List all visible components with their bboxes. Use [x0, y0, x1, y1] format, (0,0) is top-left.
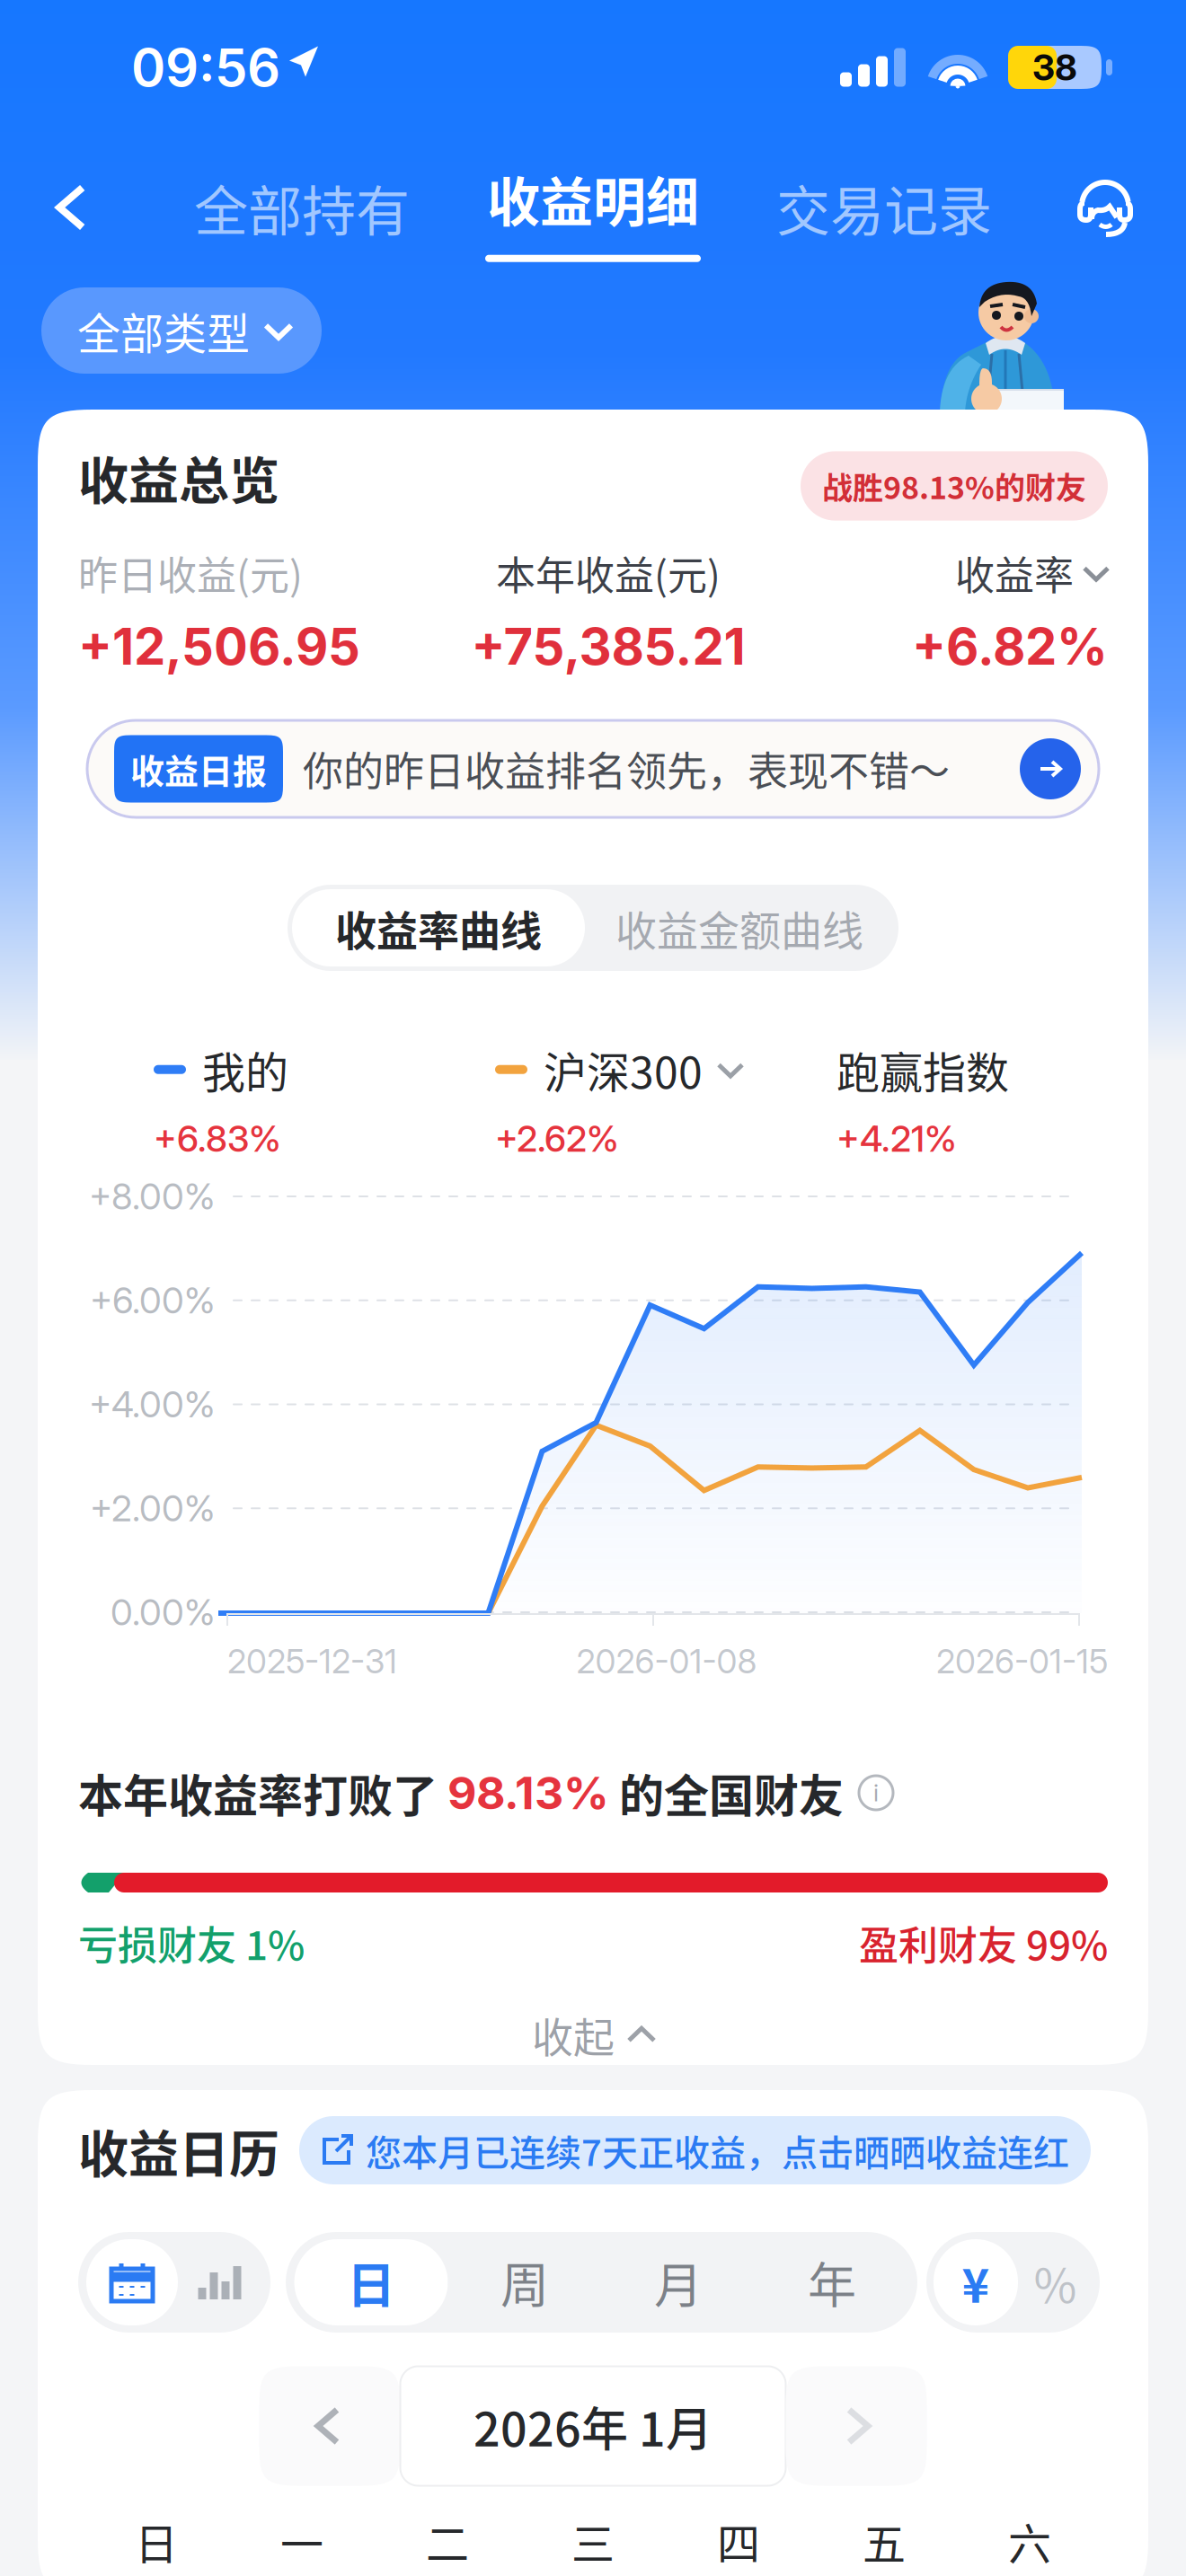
staticText: 收益日历	[78, 2114, 279, 2187]
staticText: 亏损财友 1%	[78, 1914, 305, 1971]
staticText: 本年收益(元)	[496, 544, 721, 602]
button[interactable]: 返回	[29, 146, 119, 269]
staticText: +4.00%	[89, 1383, 215, 1426]
button[interactable]: 在线客服	[1067, 142, 1143, 273]
staticText: 周	[500, 2247, 549, 2317]
staticText: 2026-01-15	[936, 1641, 1108, 1681]
staticText: %	[1034, 2249, 1077, 2316]
button[interactable]: ¥	[934, 2239, 1018, 2325]
staticText: 收益日报	[130, 744, 267, 794]
staticText: +8.00%	[89, 1175, 215, 1218]
staticText: 0.00%	[111, 1591, 215, 1634]
button[interactable]: 收益日报	[87, 720, 1099, 817]
staticText: 日	[135, 2510, 178, 2572]
staticText: +6.00%	[90, 1279, 215, 1322]
staticText: 收益金额曲线	[615, 898, 863, 958]
button[interactable]: 柱状视图	[178, 2239, 262, 2325]
button[interactable]: 全部类型	[41, 287, 322, 374]
staticText: 您本月已连续7天正收益，点击晒晒收益连红	[366, 2124, 1069, 2176]
staticText: 三	[571, 2510, 615, 2572]
staticText: +75,385.21	[471, 616, 745, 677]
button[interactable]: 下个月	[786, 2366, 927, 2486]
staticText: 收起	[532, 2004, 615, 2064]
staticText: 的全国财友	[609, 1760, 844, 1825]
button[interactable]: 2026年 1月	[400, 2366, 786, 2486]
staticText: 昨日收益(元)	[78, 544, 303, 602]
staticText: 六	[1008, 2510, 1051, 2572]
button[interactable]: 日历视图	[86, 2239, 178, 2325]
staticText: 四	[717, 2510, 760, 2572]
staticText: 交易记录	[776, 168, 992, 247]
staticText: +2.00%	[90, 1487, 215, 1530]
button[interactable]: 交易记录	[764, 134, 1005, 281]
staticText: 全部持有	[194, 168, 410, 247]
button[interactable]: 月	[602, 2239, 755, 2325]
button[interactable]: 全部持有	[181, 134, 422, 281]
button[interactable]: 收益金额曲线	[585, 889, 894, 966]
button[interactable]: %	[1018, 2239, 1093, 2325]
staticText: 二	[426, 2510, 469, 2572]
staticText: 日	[347, 2247, 395, 2317]
button[interactable]: 上个月	[259, 2366, 400, 2486]
staticText: 全部类型	[77, 299, 250, 362]
staticText: ¥	[962, 2249, 990, 2316]
staticText: 收益明细	[487, 160, 699, 237]
staticText: 沪深300	[544, 1038, 703, 1101]
staticText: +12,506.95	[78, 616, 360, 677]
staticText: 我的	[202, 1038, 288, 1101]
staticText: 年	[808, 2247, 856, 2317]
staticText: 2026年 1月	[474, 2392, 712, 2460]
staticText: 2026-01-08	[576, 1641, 757, 1681]
staticText: 跑赢指数	[836, 1038, 1009, 1101]
staticText: 收益率	[955, 544, 1074, 602]
button[interactable]: 年	[755, 2239, 909, 2325]
staticText: 收益率曲线	[335, 898, 542, 958]
staticText: +6.82%	[912, 616, 1108, 677]
staticText: 月	[654, 2247, 703, 2317]
staticText: 收益总览	[78, 441, 279, 513]
staticText: 战胜98.13%的财友	[822, 464, 1086, 508]
staticText: 你的昨日收益排名领先，表现不错～	[303, 740, 950, 798]
staticText: +6.83%	[154, 1117, 281, 1160]
staticText: i	[873, 1779, 879, 1807]
staticText: 09:56	[131, 36, 280, 99]
button[interactable]: 收益率曲线	[292, 889, 585, 966]
staticText: 五	[863, 2510, 906, 2572]
staticText: +4.21%	[836, 1117, 957, 1160]
staticText: 盈利财友 99%	[859, 1914, 1108, 1971]
staticText: +2.62%	[495, 1117, 619, 1160]
button[interactable]: 周	[448, 2239, 602, 2325]
button[interactable]: 收起	[532, 1993, 654, 2076]
button[interactable]: 日	[294, 2239, 448, 2325]
staticText: 本年收益率打败了	[78, 1760, 447, 1825]
staticText: 98.13%	[447, 1766, 609, 1820]
staticText: 一	[280, 2510, 323, 2572]
staticText: 2025-12-31	[227, 1641, 397, 1681]
button[interactable]: 您本月已连续7天正收益，点击晒晒收益连红	[299, 2116, 1091, 2184]
button[interactable]: 收益明细	[485, 135, 701, 280]
staticText: 38	[1032, 46, 1077, 89]
